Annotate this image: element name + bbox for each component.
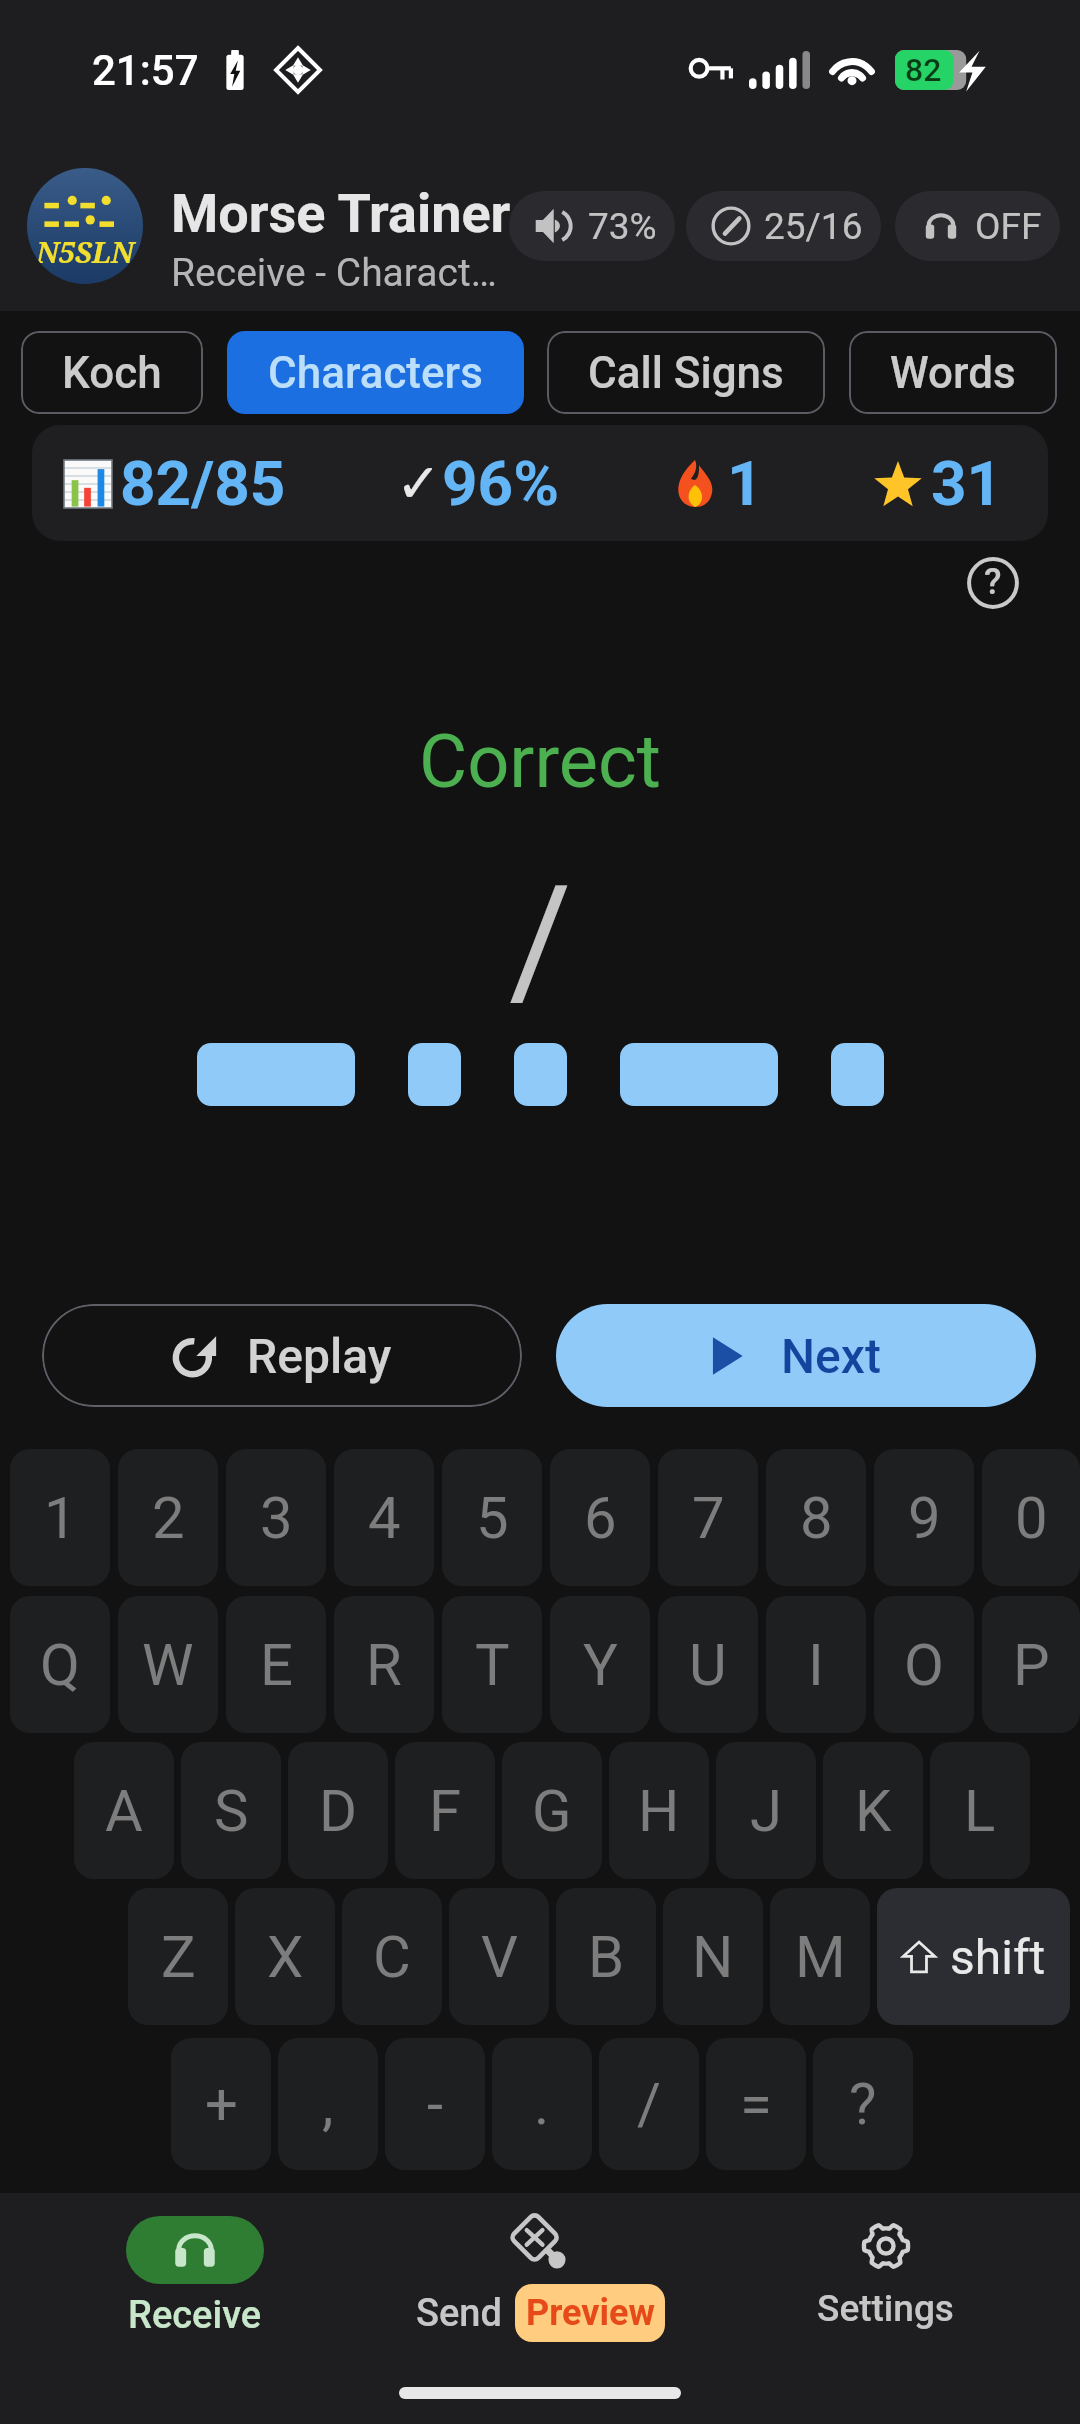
button[interactable]: W <box>118 1596 218 1733</box>
staticText: Preview <box>526 2292 655 2334</box>
button[interactable]: Call Signs <box>547 331 825 414</box>
button[interactable]: Replay <box>42 1304 522 1407</box>
button[interactable]: 9 <box>874 1449 974 1586</box>
staticText: Morse Trainer <box>171 182 511 245</box>
button[interactable]: N <box>663 1888 763 2025</box>
button[interactable]: 0 <box>982 1449 1080 1586</box>
staticText: L <box>964 1777 996 1845</box>
button[interactable]: F <box>395 1742 495 1879</box>
staticText: 1 <box>727 447 763 520</box>
staticText: 96% <box>442 447 559 520</box>
staticText: / <box>509 853 572 1031</box>
staticText: shift <box>950 1929 1046 1985</box>
staticText: P <box>1013 1631 1050 1699</box>
button[interactable]: C <box>342 1888 442 2025</box>
button[interactable]: A <box>74 1742 174 1879</box>
staticText: Characters <box>268 347 483 399</box>
button[interactable]: OFF <box>895 191 1060 261</box>
staticText: E <box>260 1631 293 1699</box>
button[interactable]: / <box>599 2038 699 2170</box>
staticText: Settings <box>817 2287 954 2330</box>
button[interactable]: Koch <box>21 331 203 414</box>
button[interactable]: M <box>770 1888 870 2025</box>
staticText: V <box>481 1923 518 1991</box>
staticText: + <box>205 2070 238 2138</box>
button[interactable]: Z <box>128 1888 228 2025</box>
staticText: S <box>214 1777 249 1845</box>
staticText: 21:57 <box>92 46 199 95</box>
button[interactable]: J <box>716 1742 816 1879</box>
button[interactable]: S <box>181 1742 281 1879</box>
button[interactable]: T <box>442 1596 542 1733</box>
staticText: ? <box>849 2070 877 2138</box>
staticText: ? <box>984 561 1002 603</box>
staticText: N <box>692 1923 734 1991</box>
staticText: 1 <box>44 1484 77 1552</box>
button[interactable]: Receive <box>22 2193 368 2338</box>
button[interactable]: 73% <box>509 191 675 261</box>
button[interactable]: Y <box>550 1596 650 1733</box>
staticText: 5 <box>476 1484 509 1552</box>
staticText: A <box>105 1777 143 1845</box>
button[interactable]: O <box>874 1596 974 1733</box>
button[interactable]: - <box>385 2038 485 2170</box>
button[interactable]: Characters <box>227 331 524 414</box>
button[interactable]: Next <box>556 1304 1036 1407</box>
staticText: 0 <box>1015 1484 1048 1552</box>
button[interactable]: 5 <box>442 1449 542 1586</box>
button[interactable]: Words <box>849 331 1057 414</box>
staticText: 8 <box>800 1484 833 1552</box>
button[interactable]: 6 <box>550 1449 650 1586</box>
button[interactable]: B <box>556 1888 656 2025</box>
staticText: 6 <box>584 1484 617 1552</box>
staticText: OFF <box>975 205 1042 248</box>
staticText: Words <box>890 347 1016 399</box>
button[interactable]: 25/16 <box>686 191 881 261</box>
staticText: Call Signs <box>588 347 784 399</box>
staticText: N5SLN <box>36 232 134 271</box>
button[interactable]: = <box>706 2038 806 2170</box>
button[interactable]: X <box>235 1888 335 2025</box>
button[interactable]: E <box>226 1596 326 1733</box>
button[interactable]: V <box>449 1888 549 2025</box>
staticText: R <box>366 1631 402 1699</box>
staticText: B <box>588 1923 625 1991</box>
button[interactable]: 1 <box>10 1449 110 1586</box>
staticText: 3 <box>260 1484 293 1552</box>
button[interactable]: P <box>982 1596 1080 1733</box>
staticText: 82 <box>905 51 942 89</box>
staticText: = <box>740 2070 772 2138</box>
staticText: C <box>373 1923 411 1991</box>
staticText: Y <box>583 1631 618 1699</box>
button[interactable]: R <box>334 1596 434 1733</box>
button[interactable]: G <box>502 1742 602 1879</box>
button[interactable]: 7 <box>658 1449 758 1586</box>
staticText: M <box>795 1923 846 1991</box>
staticText: G <box>532 1777 572 1845</box>
button[interactable]: 4 <box>334 1449 434 1586</box>
button[interactable]: U <box>658 1596 758 1733</box>
staticText: ✓ <box>396 452 442 515</box>
button[interactable]: H <box>609 1742 709 1879</box>
button[interactable]: 3 <box>226 1449 326 1586</box>
button[interactable]: . <box>492 2038 592 2170</box>
staticText: Q <box>40 1631 80 1699</box>
button[interactable]: D <box>288 1742 388 1879</box>
staticText: X <box>267 1923 304 1991</box>
staticText: . <box>534 2070 550 2138</box>
button[interactable]: L <box>930 1742 1030 1879</box>
button[interactable]: Help <box>964 554 1022 612</box>
button[interactable]: Q <box>10 1596 110 1733</box>
button[interactable]: ? <box>813 2038 913 2170</box>
button[interactable]: 8 <box>766 1449 866 1586</box>
button[interactable]: , <box>278 2038 378 2170</box>
button[interactable]: + <box>171 2038 271 2170</box>
button[interactable]: K <box>823 1742 923 1879</box>
button[interactable]: Settings <box>713 2193 1058 2330</box>
staticText: 9 <box>908 1484 941 1552</box>
staticText: O <box>904 1631 944 1699</box>
button[interactable]: I <box>766 1596 866 1733</box>
button[interactable]: 2 <box>118 1449 218 1586</box>
button[interactable]: shift <box>877 1888 1070 2025</box>
button[interactable]: Send <box>368 2193 713 2342</box>
